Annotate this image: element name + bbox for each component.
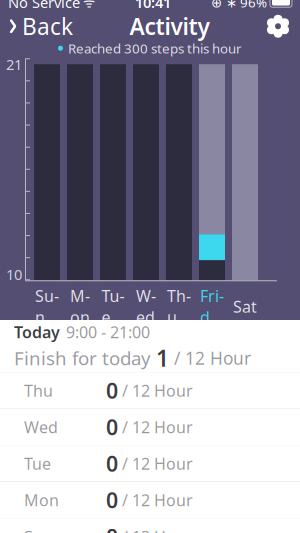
staticText: Finish for today bbox=[14, 346, 156, 370]
staticText: Frid bbox=[200, 285, 224, 328]
button[interactable]: Tue bbox=[0, 445, 300, 482]
button[interactable]: Settings bbox=[266, 8, 300, 44]
staticText: Back bbox=[22, 11, 73, 41]
staticText: Mon bbox=[24, 489, 59, 511]
staticText: Sat bbox=[233, 296, 257, 317]
staticText: Today bbox=[14, 321, 60, 343]
staticText: Sun bbox=[35, 285, 59, 328]
staticText: / 12 Hour bbox=[118, 380, 193, 401]
staticText: / 12 Hour bbox=[118, 489, 193, 511]
staticText: 0 bbox=[106, 449, 118, 478]
button[interactable]: Wed bbox=[0, 409, 300, 445]
staticText: 0 bbox=[106, 522, 118, 533]
staticText: Thu bbox=[24, 380, 53, 401]
staticText: 10:41 bbox=[135, 0, 171, 12]
staticText: Activity bbox=[129, 11, 209, 41]
button[interactable]: Sun bbox=[0, 518, 300, 533]
staticText: / 12 Hour bbox=[118, 416, 193, 438]
staticText: ᯤ bbox=[80, 0, 95, 11]
staticText: 0 bbox=[106, 376, 118, 405]
staticText: Tue bbox=[101, 285, 124, 328]
staticText: / 12 Hour bbox=[118, 453, 193, 474]
staticText: / 12 Hour bbox=[118, 526, 193, 533]
staticText: / 12 Hour bbox=[169, 346, 251, 369]
staticText: 10 bbox=[6, 264, 22, 284]
button[interactable]: Back bbox=[0, 5, 73, 47]
staticText: 9:00 - 21:00 bbox=[66, 321, 150, 343]
staticText: 0 bbox=[106, 486, 118, 514]
staticText: 1 bbox=[156, 343, 169, 373]
staticText: Sun bbox=[24, 526, 53, 533]
staticText: Wed bbox=[136, 285, 156, 328]
staticText: Mon bbox=[70, 285, 90, 328]
staticText: 21 bbox=[6, 54, 22, 74]
staticText: Wed bbox=[24, 416, 58, 438]
button[interactable]: Mon bbox=[0, 482, 300, 518]
staticText: Thu bbox=[167, 285, 191, 328]
staticText: Reached 300 steps this hour bbox=[68, 39, 242, 57]
staticText: 0 bbox=[106, 413, 118, 441]
staticText: ⊕ ∗ 96% bbox=[211, 0, 267, 11]
button[interactable]: Thu bbox=[0, 372, 300, 409]
staticText: Tue bbox=[24, 453, 51, 474]
staticText: No Service bbox=[8, 0, 80, 12]
